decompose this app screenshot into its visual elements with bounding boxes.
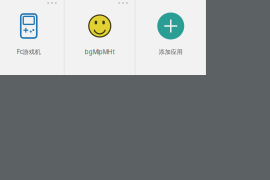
button[interactable]: 添加应用 — [136, 0, 206, 75]
button[interactable]: bgMlpMHt — [65, 0, 135, 75]
staticText: Fc游戏机 — [17, 48, 41, 56]
staticText: bgMlpMHt — [85, 48, 115, 56]
staticText: 添加应用 — [159, 48, 183, 56]
button[interactable]: Fc游戏机 — [0, 0, 64, 75]
